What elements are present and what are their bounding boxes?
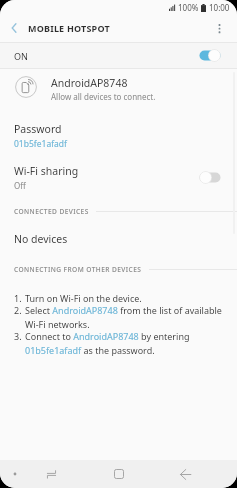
staticText: 01b5fe1afadf bbox=[14, 138, 68, 150]
staticText: 1. bbox=[14, 292, 22, 304]
staticText: MOBILE HOTSPOT bbox=[28, 22, 110, 34]
button[interactable]: AndroidAP8748 bbox=[0, 69, 237, 111]
staticText: 10:00 bbox=[209, 2, 230, 13]
button[interactable]: Home bbox=[85, 460, 152, 488]
staticText: AndroidAP8748 bbox=[51, 76, 128, 90]
staticText: Allow all devices to connect. bbox=[51, 91, 156, 102]
button[interactable]: Navigate up bbox=[0, 14, 28, 42]
staticText: Wi-Fi sharing bbox=[14, 164, 79, 178]
staticText: Password bbox=[14, 122, 62, 136]
staticText: 100% bbox=[178, 2, 199, 13]
staticText: Off bbox=[14, 180, 26, 191]
staticText: CONNECTED DEVICES bbox=[14, 207, 89, 216]
staticText: Connect to AndroidAP8748 by entering 01b… bbox=[25, 330, 225, 356]
staticText: ON bbox=[14, 50, 28, 62]
staticText: No devices bbox=[14, 232, 68, 246]
button[interactable]: Back bbox=[152, 460, 219, 488]
button[interactable]: Recents bbox=[18, 460, 85, 488]
button[interactable]: ON bbox=[0, 42, 237, 69]
staticText: 3. bbox=[14, 330, 22, 342]
button[interactable]: Keyboard bbox=[8, 467, 22, 481]
button[interactable]: Wi-Fi sharing bbox=[0, 153, 237, 198]
staticText: 2. bbox=[14, 304, 22, 316]
button[interactable]: More options bbox=[201, 14, 237, 42]
staticText: Select AndroidAP8748 from the list of av… bbox=[25, 304, 225, 330]
button[interactable]: Password bbox=[0, 111, 237, 153]
staticText: Turn on Wi-Fi on the device. bbox=[25, 292, 142, 304]
staticText: CONNECTING FROM OTHER DEVICES bbox=[14, 265, 142, 274]
